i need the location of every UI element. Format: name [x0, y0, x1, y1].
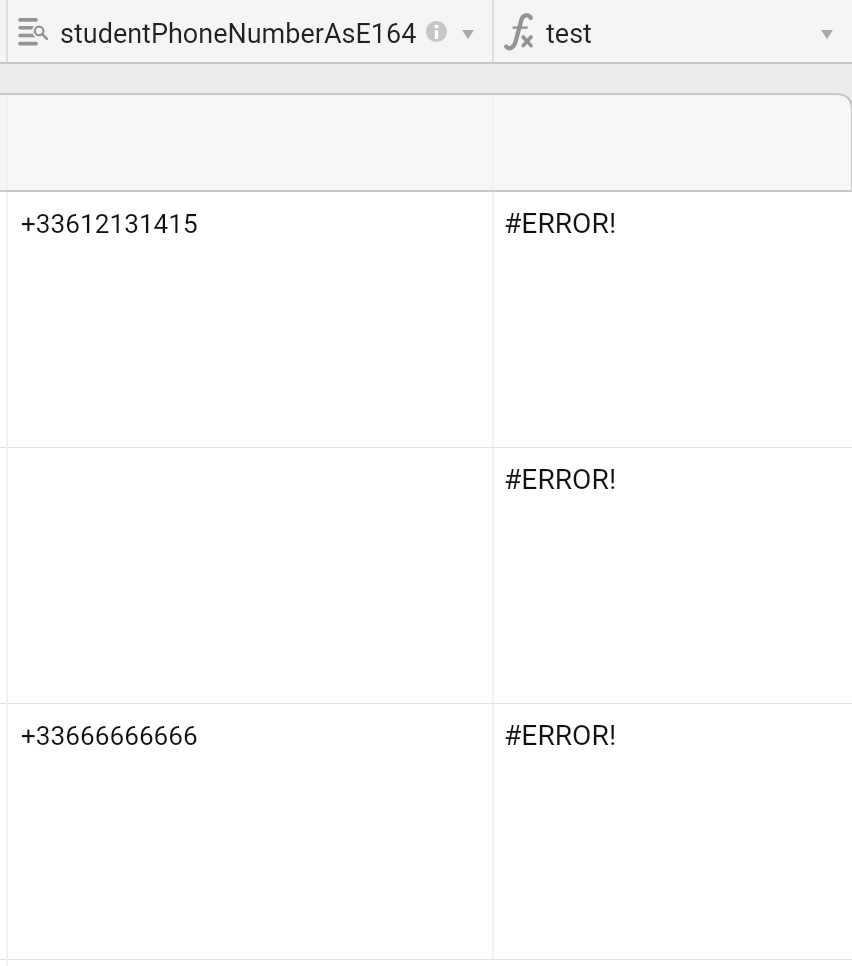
other: Filter and search — [18, 14, 50, 46]
other: Column info — [426, 21, 447, 42]
staticText: +33666666666 — [21, 721, 198, 752]
staticText: studentPhoneNumberAsE164 — [60, 18, 417, 50]
button[interactable]: Filter and search — [0, 0, 493, 62]
button[interactable]: +33666666666 — [0, 704, 852, 959]
staticText: #ERROR! — [504, 207, 617, 240]
button[interactable] — [0, 93, 852, 190]
button[interactable]: #ERROR! — [0, 448, 852, 703]
button[interactable]: +33612131415 — [0, 192, 852, 447]
staticText: test — [546, 18, 592, 50]
other: Formula — [505, 14, 535, 48]
staticText: #ERROR! — [504, 463, 617, 496]
staticText: #ERROR! — [504, 719, 617, 752]
button[interactable]: Formula — [493, 0, 852, 62]
staticText: +33612131415 — [21, 209, 198, 240]
